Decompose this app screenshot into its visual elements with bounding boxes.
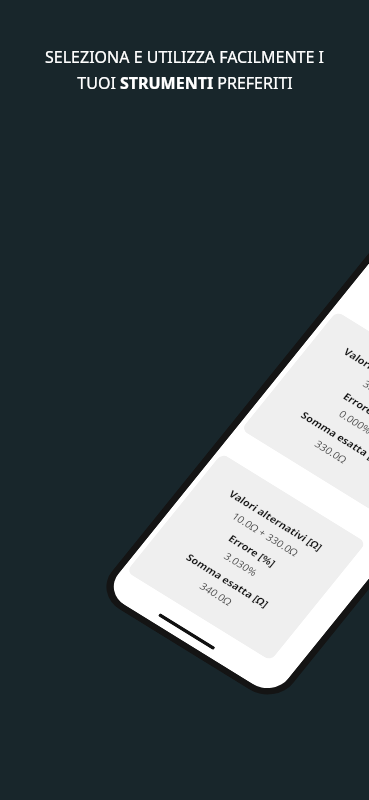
- staticText: 0.000%: [336, 407, 369, 437]
- staticText: Valori alternativi [Ω]: [226, 487, 326, 554]
- staticText: Errore [%]: [341, 389, 369, 427]
- staticText: 340.0Ω: [197, 579, 236, 609]
- button[interactable]: Valori alternativi [Ω]: [241, 311, 369, 519]
- staticText: 330.0Ω: [360, 377, 369, 406]
- staticText: 330.0Ω: [312, 437, 351, 466]
- staticText: 10.0Ω + 330.0Ω: [229, 509, 302, 559]
- staticText: Errore [%]: [226, 531, 279, 569]
- staticText: 3.030%: [221, 549, 261, 579]
- staticText: SELEZIONA E UTILIZZA FACILMENTE I: [45, 46, 324, 68]
- staticText: TUOI STRUMENTI PREFERITI: [77, 72, 293, 94]
- staticText: Somma esatta [Ω]: [184, 550, 272, 611]
- button[interactable]: Valori alternativi [Ω]: [126, 453, 366, 661]
- staticText: Valori alternativi [Ω]: [341, 345, 369, 411]
- staticText: Somma esatta [Ω]: [298, 408, 369, 468]
